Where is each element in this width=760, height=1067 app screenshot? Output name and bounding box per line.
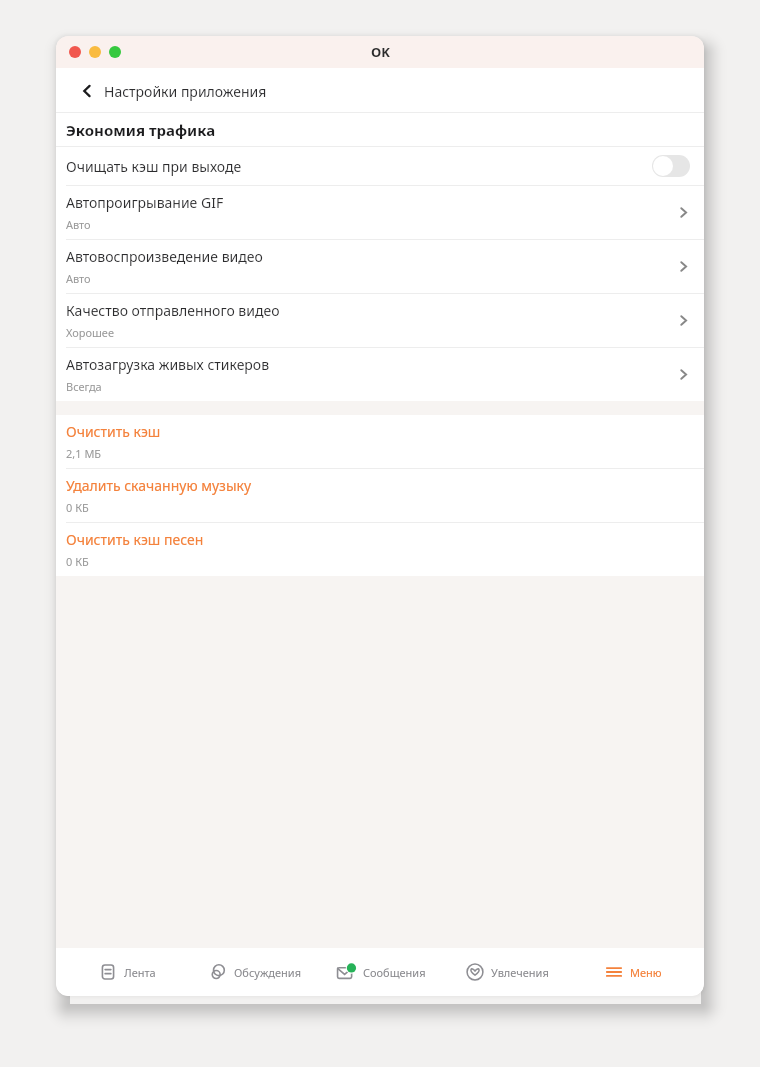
button[interactable]: Maximize xyxy=(109,46,121,58)
staticText: 0 КБ xyxy=(66,554,89,569)
button[interactable]: Toggle xyxy=(652,155,690,177)
button[interactable]: Очистить кэш песен xyxy=(56,523,704,576)
staticText: Очищать кэш при выходе xyxy=(66,157,652,176)
button[interactable]: Back xyxy=(74,78,267,104)
button[interactable]: Автовоспроизведение видео xyxy=(56,240,704,293)
staticText: Качество отправленного видео xyxy=(66,301,280,320)
staticText: Авто xyxy=(66,271,91,286)
button[interactable]: Автозагрузка живых стикеров xyxy=(56,348,704,401)
staticText: Очистить кэш песен xyxy=(66,530,204,549)
other: Back xyxy=(74,78,100,104)
button[interactable]: Автопроигрывание GIF xyxy=(56,186,704,239)
staticText: 0 КБ xyxy=(66,500,89,515)
staticText: Очистить кэш xyxy=(66,422,161,441)
other: Меню xyxy=(605,963,623,981)
button[interactable]: Сообщения xyxy=(318,948,444,996)
button[interactable]: Качество отправленного видео xyxy=(56,294,704,347)
staticText: Автозагрузка живых стикеров xyxy=(66,355,270,374)
other: Сообщения xyxy=(337,963,356,982)
staticText: Всегда xyxy=(66,379,102,394)
staticText: Настройки приложения xyxy=(104,82,267,101)
button[interactable]: Увлечения xyxy=(444,948,570,996)
staticText: 2,1 МБ xyxy=(66,446,102,461)
staticText: Авто xyxy=(66,217,91,232)
staticText: Хорошее xyxy=(66,325,114,340)
staticText: Экономия трафика xyxy=(66,120,216,140)
button[interactable]: Очистить кэш xyxy=(56,415,704,468)
button[interactable]: Удалить скачанную музыку xyxy=(56,469,704,522)
button[interactable]: Close xyxy=(69,46,81,58)
other: Обсуждения xyxy=(209,963,227,981)
staticText: Лента xyxy=(124,965,156,980)
button[interactable]: Лента xyxy=(64,948,191,996)
other: Лента xyxy=(99,963,117,981)
staticText: Удалить скачанную музыку xyxy=(66,476,252,495)
staticText: Меню xyxy=(630,965,662,980)
staticText: Сообщения xyxy=(363,965,426,980)
button[interactable]: Обсуждения xyxy=(191,948,318,996)
button[interactable]: Меню xyxy=(570,948,696,996)
other: Увлечения xyxy=(466,963,484,981)
staticText: Автовоспроизведение видео xyxy=(66,247,263,266)
staticText: Автопроигрывание GIF xyxy=(66,193,224,212)
staticText: Обсуждения xyxy=(234,965,301,980)
button[interactable]: Minimize xyxy=(89,46,101,58)
staticText: Увлечения xyxy=(491,965,549,980)
staticText: OK xyxy=(371,43,390,61)
button[interactable]: Очищать кэш при выходе xyxy=(56,147,704,185)
